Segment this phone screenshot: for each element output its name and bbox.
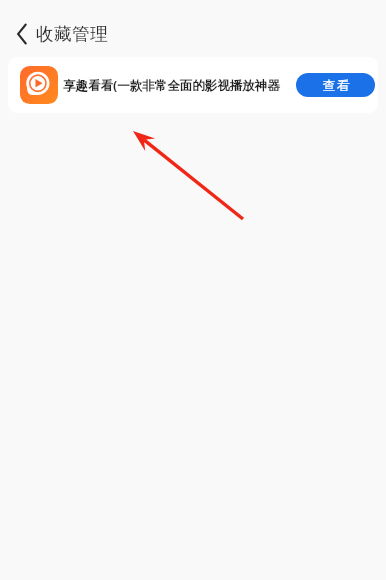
staticText: 查看 bbox=[322, 77, 350, 93]
button[interactable]: 返回 bbox=[4, 18, 36, 50]
button[interactable]: 享趣看看(一款非常全面的影视播放神器 bbox=[8, 57, 378, 113]
staticText: 收藏管理 bbox=[36, 23, 109, 45]
button[interactable]: 查看 bbox=[296, 73, 375, 97]
staticText: 享趣看看(一款非常全面的影视播放神器 bbox=[63, 77, 313, 94]
